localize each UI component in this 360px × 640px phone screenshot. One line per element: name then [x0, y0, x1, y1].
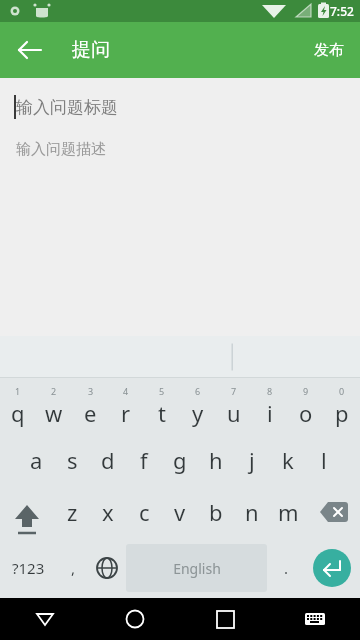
button[interactable]: g	[162, 434, 198, 486]
staticText: u	[227, 398, 241, 428]
button[interactable]: 输入问题描述	[0, 134, 360, 164]
button[interactable]: v	[162, 486, 198, 538]
button[interactable]: a	[18, 434, 54, 486]
staticText: 8	[267, 385, 273, 397]
staticText: c	[139, 497, 150, 527]
staticText: h	[209, 445, 223, 475]
button[interactable]: k	[270, 434, 306, 486]
staticText: ?123	[12, 558, 45, 578]
button[interactable]: Shift	[0, 486, 54, 538]
staticText: e	[84, 398, 97, 428]
staticText: q	[11, 398, 25, 428]
button[interactable]: 0	[324, 378, 360, 434]
button[interactable]: c	[126, 486, 162, 538]
staticText: 输入问题描述	[16, 140, 106, 159]
staticText: v	[174, 497, 186, 527]
staticText: 5	[159, 385, 165, 397]
button[interactable]: 1	[0, 378, 36, 434]
button[interactable]: Hide keyboard	[0, 598, 90, 640]
button[interactable]: 7	[216, 378, 252, 434]
button[interactable]: n	[234, 486, 270, 538]
staticText: 9	[303, 385, 309, 397]
button[interactable]: 5	[144, 378, 180, 434]
staticText: l	[321, 445, 327, 475]
staticText: j	[249, 445, 255, 475]
staticText: y	[192, 398, 204, 428]
staticText: a	[30, 445, 43, 475]
button[interactable]: b	[198, 486, 234, 538]
staticText: b	[209, 497, 223, 527]
staticText: r	[121, 398, 131, 428]
staticText: w	[45, 398, 63, 428]
staticText: 1	[15, 385, 21, 397]
staticText: 发布	[314, 41, 344, 60]
button[interactable]: .	[269, 538, 303, 598]
staticText: d	[101, 445, 115, 475]
button[interactable]: English	[126, 544, 267, 592]
staticText: o	[299, 398, 313, 428]
button[interactable]: Enter	[303, 538, 360, 598]
button[interactable]: Back	[6, 26, 54, 74]
button[interactable]: h	[198, 434, 234, 486]
button[interactable]: 发布	[298, 27, 360, 74]
button[interactable]: 6	[180, 378, 216, 434]
button[interactable]: d	[90, 434, 126, 486]
staticText: 3	[88, 385, 94, 397]
button[interactable]: Backspace	[306, 486, 360, 538]
button[interactable]: l	[306, 434, 342, 486]
staticText: 输入问题标题	[16, 97, 118, 118]
staticText: i	[267, 398, 273, 428]
staticText: g	[173, 445, 187, 475]
button[interactable]: ?123	[0, 538, 56, 598]
staticText: p	[335, 398, 349, 428]
button[interactable]: 8	[252, 378, 288, 434]
button[interactable]: 4	[108, 378, 144, 434]
staticText: z	[67, 497, 78, 527]
button[interactable]: j	[234, 434, 270, 486]
button[interactable]: x	[90, 486, 126, 538]
staticText: 4	[123, 385, 129, 397]
staticText: 0	[339, 385, 345, 397]
button[interactable]: 2	[36, 378, 72, 434]
staticText: 提问	[72, 38, 110, 62]
staticText: k	[282, 445, 294, 475]
button[interactable]: Switch keyboard	[270, 598, 360, 640]
staticText: m	[278, 497, 299, 527]
button[interactable]: Recents	[180, 598, 270, 640]
button[interactable]: m	[270, 486, 306, 538]
staticText: English	[173, 559, 221, 578]
staticText: f	[140, 445, 148, 475]
button[interactable]: 9	[288, 378, 324, 434]
staticText: 2	[51, 385, 57, 397]
staticText: .	[284, 558, 289, 578]
staticText: t	[158, 398, 166, 428]
staticText: x	[102, 497, 114, 527]
staticText: 6	[195, 385, 201, 397]
button[interactable]: 输入问题标题	[0, 90, 360, 124]
button[interactable]: 3	[72, 378, 108, 434]
button[interactable]: ,	[56, 538, 90, 598]
button[interactable]: z	[54, 486, 90, 538]
staticText: s	[67, 445, 78, 475]
staticText: ,	[71, 558, 76, 578]
button[interactable]: f	[126, 434, 162, 486]
button[interactable]: Change language	[90, 538, 124, 598]
button[interactable]: s	[54, 434, 90, 486]
staticText: 7:52	[330, 3, 354, 19]
staticText: 7	[231, 385, 237, 397]
staticText: n	[245, 497, 259, 527]
button[interactable]: Home	[90, 598, 180, 640]
